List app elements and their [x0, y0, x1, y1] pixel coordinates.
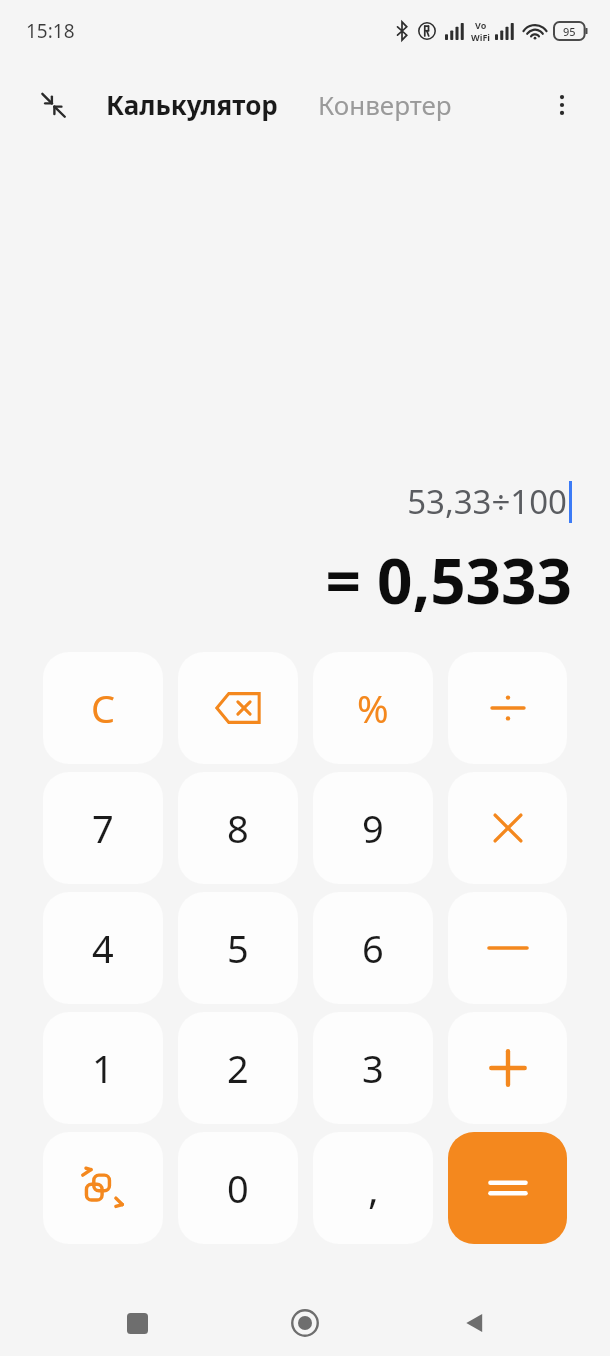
- staticText: 9: [362, 802, 384, 854]
- button[interactable]: 8: [178, 772, 298, 884]
- button[interactable]: Back: [442, 1291, 506, 1355]
- button[interactable]: Divide: [448, 652, 567, 764]
- staticText: 5: [227, 922, 249, 974]
- button[interactable]: 6: [313, 892, 433, 1004]
- button[interactable]: Backspace: [178, 652, 298, 764]
- button[interactable]: Multiply: [448, 772, 567, 884]
- staticText: = 0,5333: [325, 538, 572, 622]
- staticText: 0: [227, 1162, 249, 1214]
- staticText: Vo: [475, 19, 487, 31]
- staticText: 8: [227, 802, 249, 854]
- button[interactable]: C: [43, 652, 163, 764]
- staticText: 7: [92, 802, 114, 854]
- button[interactable]: 7: [43, 772, 163, 884]
- button[interactable]: %: [313, 652, 433, 764]
- staticText: WiFi: [471, 31, 491, 43]
- button[interactable]: Minus: [448, 892, 567, 1004]
- staticText: 4: [92, 922, 114, 974]
- button[interactable]: Конвертер: [308, 81, 462, 128]
- button[interactable]: Equals: [448, 1132, 567, 1244]
- button[interactable]: Калькулятор: [96, 81, 288, 128]
- staticText: 1: [92, 1042, 114, 1094]
- button[interactable]: Recents: [105, 1291, 169, 1355]
- staticText: 15:18: [26, 18, 75, 44]
- button[interactable]: 1: [43, 1012, 163, 1124]
- button[interactable]: More options: [540, 83, 584, 127]
- staticText: Конвертер: [318, 87, 452, 122]
- staticText: 53,33÷100: [407, 479, 567, 524]
- staticText: ,: [368, 1161, 379, 1215]
- button[interactable]: 2: [178, 1012, 298, 1124]
- button[interactable]: Plus: [448, 1012, 567, 1124]
- button[interactable]: ,: [313, 1132, 433, 1244]
- button[interactable]: Collapse: [30, 82, 76, 128]
- button[interactable]: Home: [273, 1291, 337, 1355]
- staticText: C: [91, 682, 116, 734]
- staticText: Калькулятор: [106, 87, 278, 122]
- staticText: %: [357, 682, 389, 734]
- staticText: 6: [362, 922, 384, 974]
- button[interactable]: 9: [313, 772, 433, 884]
- staticText: 2: [227, 1042, 249, 1094]
- button[interactable]: 5: [178, 892, 298, 1004]
- button[interactable]: 4: [43, 892, 163, 1004]
- staticText: 3: [362, 1042, 384, 1094]
- button[interactable]: 0: [178, 1132, 298, 1244]
- button[interactable]: 3: [313, 1012, 433, 1124]
- button[interactable]: Smart actions: [43, 1132, 163, 1244]
- staticText: 95: [563, 24, 576, 39]
